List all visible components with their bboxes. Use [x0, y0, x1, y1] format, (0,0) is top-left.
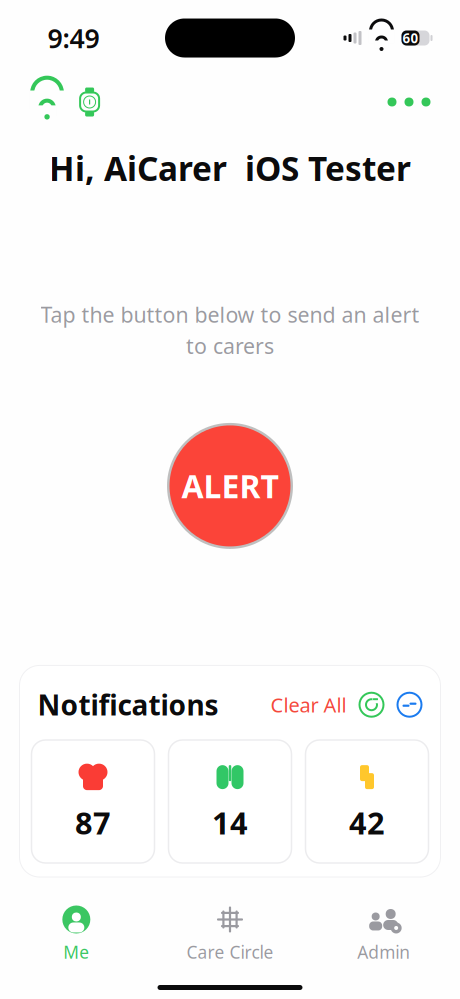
staticText: Hi, AiCarer iOS Tester: [49, 146, 411, 190]
staticText: Tap the button below to send an alert: [40, 300, 419, 329]
staticText: 9:49: [47, 20, 99, 56]
button[interactable]: More options: [377, 85, 440, 118]
button[interactable]: Clear All: [270, 685, 346, 724]
staticText: 87: [75, 802, 111, 843]
button[interactable]: 87: [31, 740, 154, 863]
button[interactable]: Collapse: [384, 688, 422, 722]
button[interactable]: 14: [168, 740, 291, 863]
staticText: Admin: [357, 940, 410, 963]
staticText: Me: [63, 940, 89, 963]
button[interactable]: Admin: [307, 900, 460, 967]
staticText: to carers: [186, 332, 274, 360]
staticText: ALERT: [181, 465, 278, 507]
staticText: 14: [212, 802, 248, 843]
staticText: Clear All: [270, 691, 346, 718]
button[interactable]: 42: [305, 740, 428, 863]
staticText: 42: [349, 802, 385, 843]
button[interactable]: Me: [0, 900, 153, 967]
staticText: Notifications: [37, 686, 218, 723]
staticText: Care Circle: [186, 940, 273, 963]
staticText: 60: [402, 29, 418, 47]
button[interactable]: Care Circle: [153, 900, 307, 967]
button[interactable]: Refresh: [346, 688, 384, 722]
button[interactable]: ALERT: [150, 406, 310, 566]
